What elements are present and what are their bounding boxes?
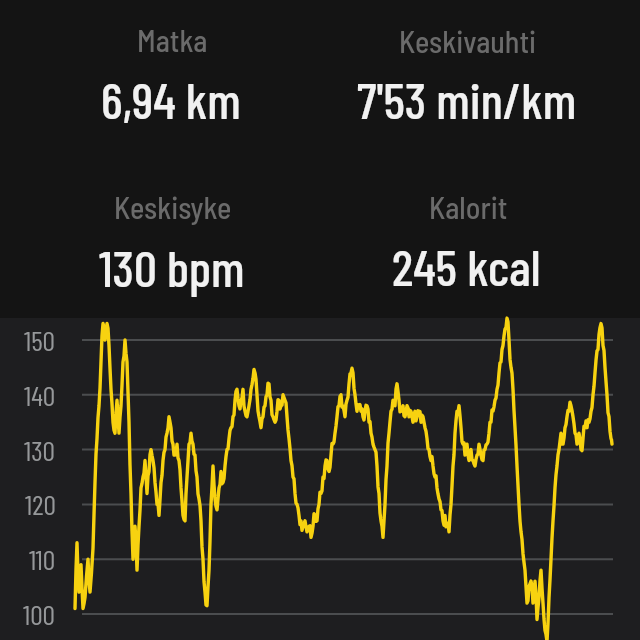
staticText: Matka	[137, 22, 208, 58]
staticText: 6,94 km	[101, 68, 241, 129]
staticText: Keskivauhti	[399, 23, 537, 59]
staticText: 245 kcal	[392, 235, 541, 296]
staticText: 100	[23, 597, 56, 631]
staticText: Kalorit	[429, 189, 508, 225]
staticText: 140	[24, 378, 56, 412]
staticText: 7'53 min/km	[357, 68, 577, 129]
staticText: 130 bpm	[99, 236, 245, 297]
staticText: Keskisyke	[114, 189, 232, 225]
staticText: 150	[24, 323, 56, 357]
staticText: 110	[29, 542, 56, 576]
staticText: 130	[24, 433, 56, 467]
staticText: 120	[25, 487, 56, 521]
